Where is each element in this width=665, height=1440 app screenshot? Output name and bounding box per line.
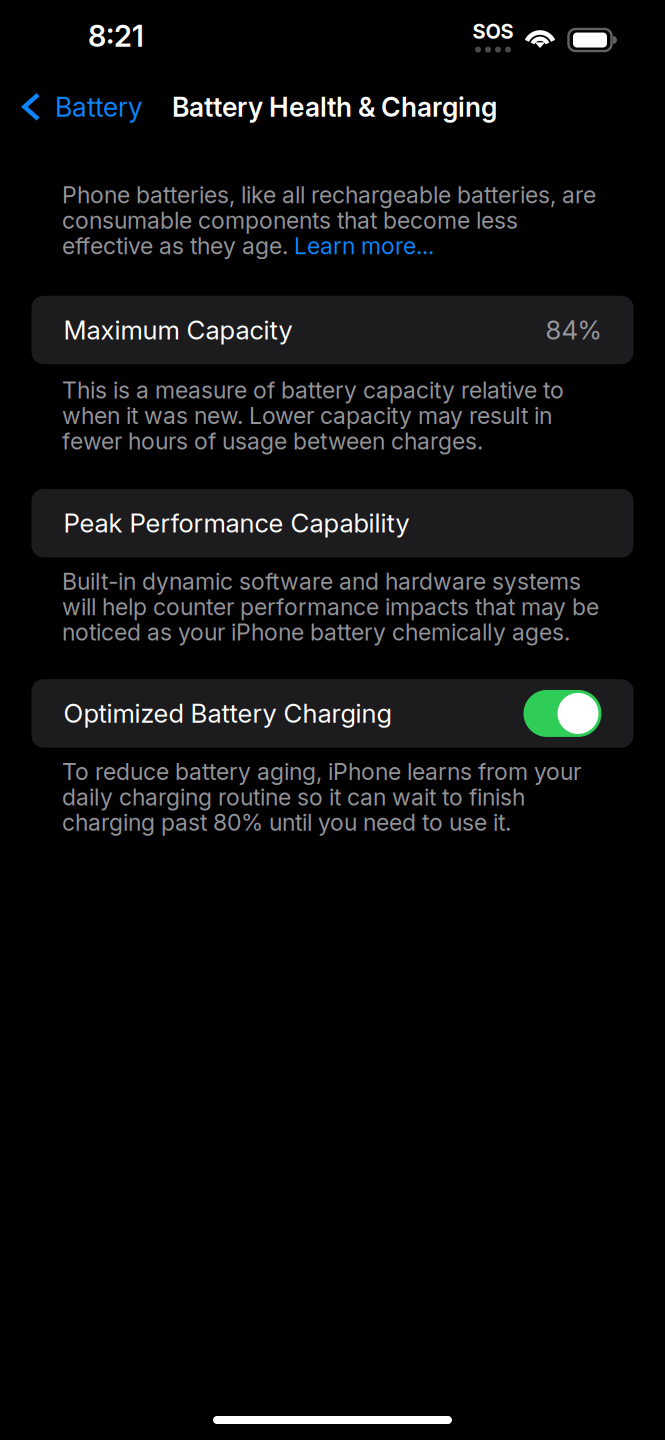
staticText: Phone batteries, like all rechargeable b… [62,181,596,260]
staticText: To reduce battery aging, iPhone learns f… [62,758,581,836]
staticText: Built-in dynamic software and hardware s… [62,567,599,646]
staticText: Battery Health & Charging [172,91,497,123]
staticText: Maximum Capacity [63,314,292,346]
staticText: Battery [55,91,143,123]
button[interactable]: Peak Performance Capability [31,489,633,557]
staticText: Peak Performance Capability [63,508,409,539]
staticText: Optimized Battery Charging [63,698,391,729]
button[interactable]: Battery [0,76,155,138]
button[interactable]: Phone batteries, like all rechargeable b… [0,181,665,260]
staticText: SOS [472,19,513,44]
staticText: This is a measure of battery capacity re… [62,376,564,455]
button[interactable]: Optimized Battery Charging [31,679,633,748]
staticText: 8:21 [88,18,144,54]
staticText: 84% [545,314,601,346]
button[interactable]: Maximum Capacity [31,296,633,364]
